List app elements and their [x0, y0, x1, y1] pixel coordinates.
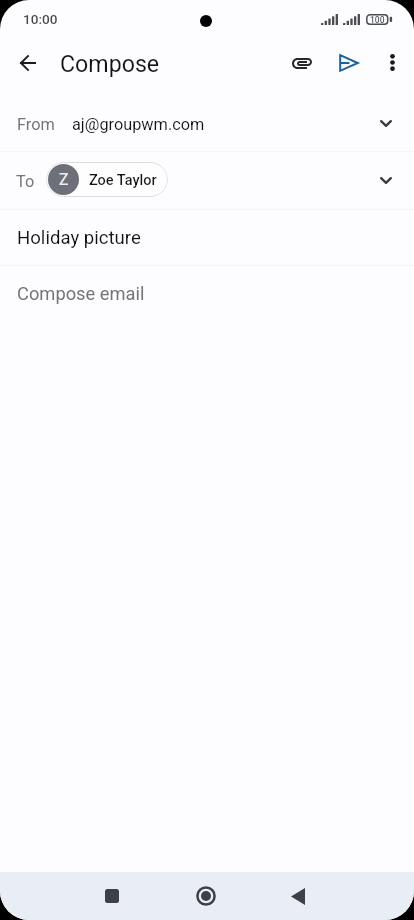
button[interactable]: To: [0, 152, 414, 209]
button[interactable]: Expand recipients: [364, 158, 408, 202]
button[interactable]: Home: [184, 874, 228, 918]
staticText: Compose email: [17, 283, 145, 304]
button[interactable]: Z: [46, 162, 168, 197]
button[interactable]: Send: [325, 39, 373, 87]
button[interactable]: From: [0, 93, 414, 151]
button[interactable]: Back: [276, 874, 320, 918]
staticText: From: [17, 115, 55, 134]
button[interactable]: Expand recipients: [364, 101, 408, 145]
staticText: Compose: [60, 50, 160, 77]
button[interactable]: Compose email: [0, 266, 414, 321]
staticText: Holiday picture: [17, 227, 141, 249]
staticText: Z: [59, 170, 69, 189]
staticText: Zoe Taylor: [89, 172, 157, 189]
staticText: 10:00: [23, 11, 58, 27]
staticText: To: [16, 172, 35, 191]
button[interactable]: Back: [4, 39, 52, 87]
button[interactable]: Attach file: [278, 39, 326, 87]
staticText: aj@groupwm.com: [72, 115, 205, 134]
button[interactable]: Recent apps: [90, 874, 134, 918]
button[interactable]: More options: [370, 40, 414, 84]
staticText: 100: [370, 15, 385, 25]
button[interactable]: Holiday picture: [0, 210, 414, 265]
